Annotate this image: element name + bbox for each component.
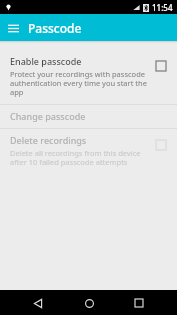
staticText: Enable passcode bbox=[10, 55, 82, 67]
button[interactable]: Home bbox=[77, 291, 101, 315]
button[interactable]: Change passcode bbox=[0, 105, 177, 128]
button[interactable]: Enable passcode bbox=[153, 58, 169, 74]
button[interactable]: Open navigation drawer bbox=[4, 18, 23, 37]
button[interactable]: Recent apps bbox=[127, 291, 151, 315]
staticText: Delete all recordings from this device a… bbox=[10, 148, 147, 168]
staticText: 11:54 bbox=[152, 2, 173, 13]
staticText: Passcode bbox=[28, 20, 82, 36]
button[interactable]: Enable passcode bbox=[0, 50, 177, 104]
button[interactable]: Back bbox=[26, 291, 50, 315]
button[interactable]: Delete recordings bbox=[153, 137, 169, 153]
staticText: Protect your recordings with passcode au… bbox=[10, 69, 147, 98]
button[interactable]: Delete recordings bbox=[0, 129, 177, 174]
staticText: Delete recordings bbox=[10, 134, 87, 146]
staticText: Change passcode bbox=[10, 110, 86, 122]
